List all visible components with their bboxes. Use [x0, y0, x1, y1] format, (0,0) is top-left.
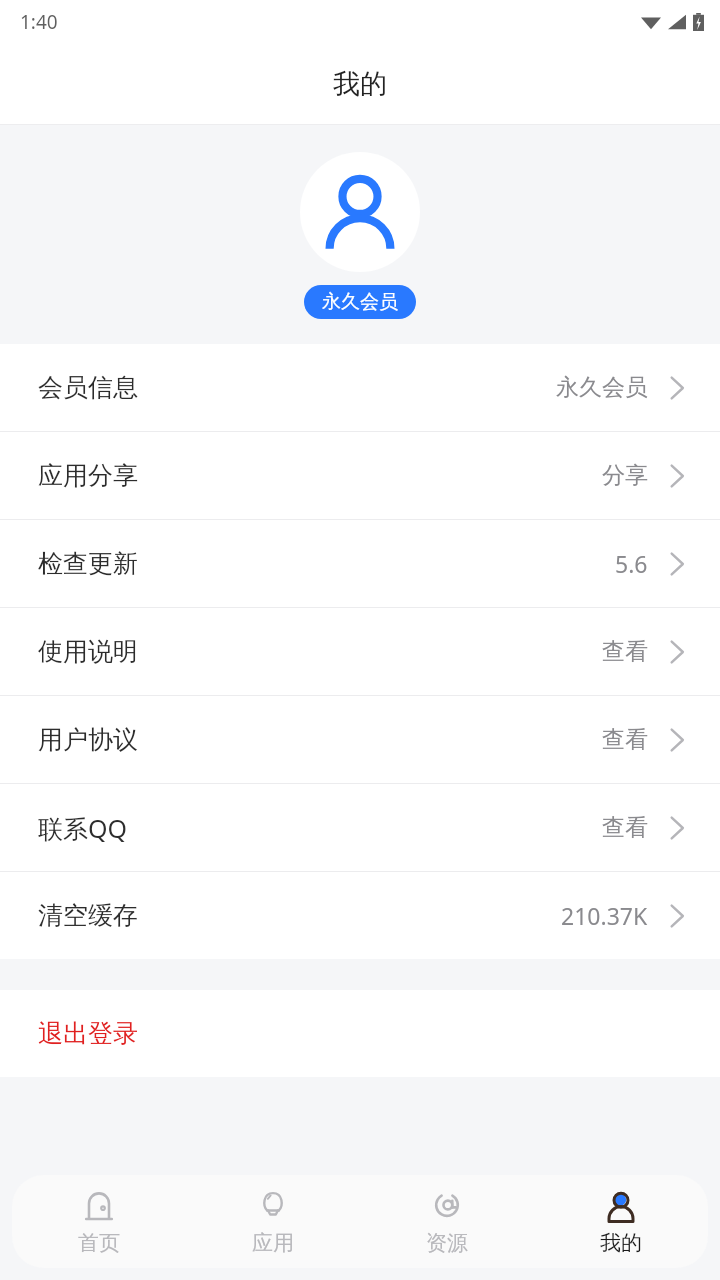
staticText: 用户协议 — [38, 724, 138, 755]
staticText: 5.6 — [615, 548, 648, 579]
staticText: 查看 — [602, 637, 648, 666]
staticText: 我的 — [600, 1230, 642, 1256]
staticText: 1:40 — [20, 9, 58, 35]
staticText: 首页 — [78, 1230, 120, 1256]
button[interactable]: 联系QQ — [0, 784, 720, 871]
staticText: 查看 — [602, 813, 648, 842]
button[interactable]: 我的 — [534, 1175, 708, 1268]
button[interactable]: 清空缓存 — [0, 872, 720, 959]
staticText: 查看 — [602, 725, 648, 754]
staticText: 检查更新 — [38, 548, 138, 579]
staticText: 应用 — [252, 1230, 294, 1256]
staticText: 永久会员 — [322, 290, 398, 314]
button[interactable]: 应用 — [186, 1175, 360, 1268]
button[interactable]: 用户协议 — [0, 696, 720, 783]
staticText: 清空缓存 — [38, 900, 138, 931]
staticText: 210.37K — [561, 900, 648, 931]
button[interactable]: 使用说明 — [0, 608, 720, 695]
button[interactable]: Avatar — [300, 152, 420, 272]
button[interactable]: 资源 — [360, 1175, 534, 1268]
staticText: 我的 — [333, 67, 387, 101]
staticText: 联系QQ — [38, 811, 128, 845]
staticText: 分享 — [602, 461, 648, 490]
staticText: 应用分享 — [38, 460, 138, 491]
button[interactable]: 永久会员 — [304, 285, 416, 319]
staticText: 资源 — [426, 1230, 468, 1256]
button[interactable]: 会员信息 — [0, 344, 720, 431]
button[interactable]: 退出登录 — [0, 990, 720, 1077]
staticText: 使用说明 — [38, 636, 138, 667]
staticText: 退出登录 — [38, 1018, 138, 1049]
button[interactable]: 检查更新 — [0, 520, 720, 607]
button[interactable]: 首页 — [12, 1175, 186, 1268]
staticText: 会员信息 — [38, 372, 138, 403]
staticText: 永久会员 — [556, 373, 648, 402]
button[interactable]: 应用分享 — [0, 432, 720, 519]
